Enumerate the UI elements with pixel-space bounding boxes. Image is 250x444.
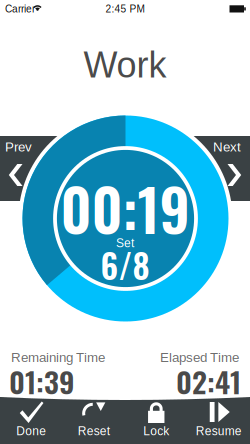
- staticText: Carrier: [5, 3, 35, 15]
- staticText: 6/8: [100, 240, 149, 290]
- staticText: Reset: [78, 424, 110, 438]
- staticText: Work: [83, 45, 166, 85]
- button[interactable]: Lock: [125, 399, 187, 444]
- button[interactable]: Done: [0, 399, 62, 444]
- staticText: 2:45 PM: [105, 3, 144, 15]
- staticText: Lock: [143, 424, 169, 438]
- staticText: Set: [116, 236, 134, 250]
- staticText: Done: [16, 424, 46, 438]
- staticText: Next: [213, 140, 241, 154]
- button[interactable]: Resume: [187, 399, 250, 444]
- button[interactable]: Previous interval: [0, 0, 46, 444]
- staticText: 02:41: [176, 359, 241, 403]
- button[interactable]: Reset: [62, 399, 125, 444]
- staticText: Resume: [196, 424, 242, 438]
- button[interactable]: Next interval: [0, 0, 250, 444]
- staticText: 01:39: [9, 359, 75, 403]
- staticText: 00:19: [60, 165, 189, 250]
- staticText: Remaining Time: [11, 350, 105, 365]
- staticText: Elapsed Time: [160, 350, 239, 365]
- staticText: Prev: [5, 140, 32, 154]
